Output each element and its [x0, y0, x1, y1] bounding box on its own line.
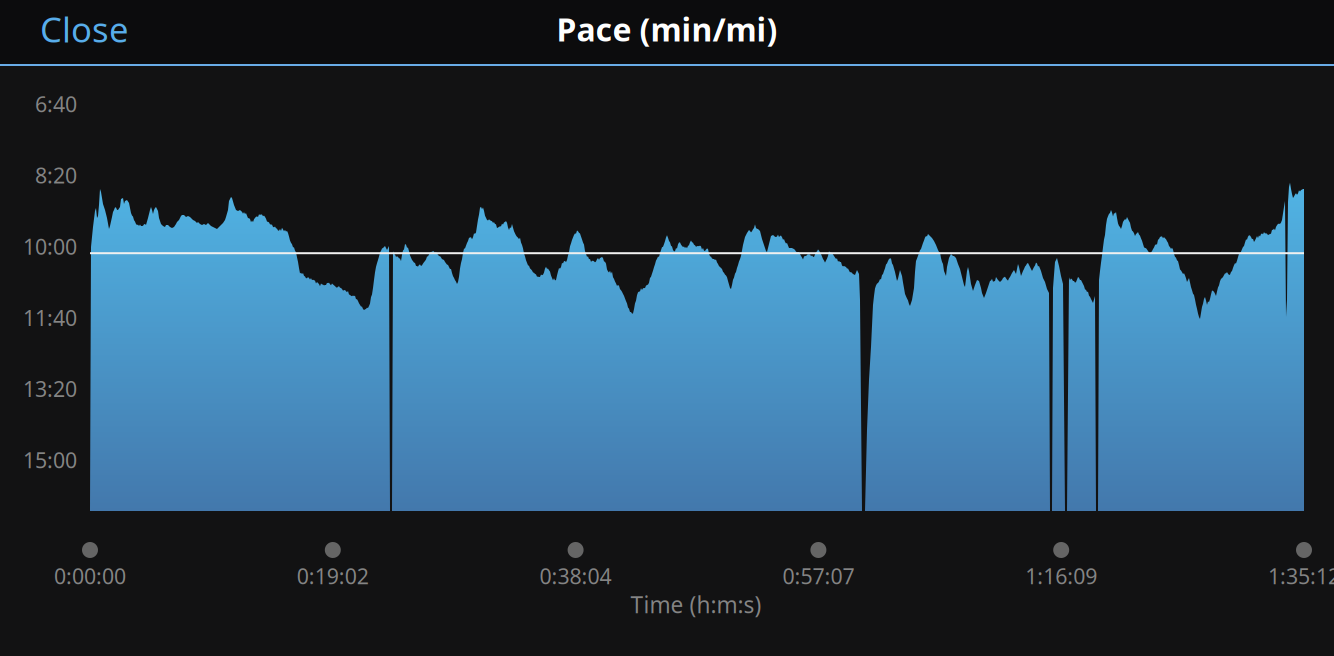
staticText: 10:00	[23, 232, 77, 260]
staticText: 1:35:12	[1268, 562, 1334, 590]
staticText: 8:20	[35, 161, 77, 189]
staticText: 11:40	[23, 303, 77, 332]
staticText: 0:00:00	[54, 562, 126, 590]
staticText: Pace (min/mi)	[556, 8, 777, 50]
button[interactable]: Close	[40, 3, 160, 55]
staticText: 6:40	[35, 90, 77, 118]
staticText: 15:00	[23, 446, 77, 474]
staticText: 13:20	[23, 375, 77, 403]
staticText: 0:19:02	[297, 562, 369, 590]
staticText: 1:16:09	[1025, 562, 1097, 590]
staticText: Close	[40, 6, 129, 52]
staticText: 0:38:04	[540, 562, 612, 590]
staticText: Time (h:m:s)	[630, 589, 761, 619]
staticText: 0:57:07	[782, 562, 854, 590]
